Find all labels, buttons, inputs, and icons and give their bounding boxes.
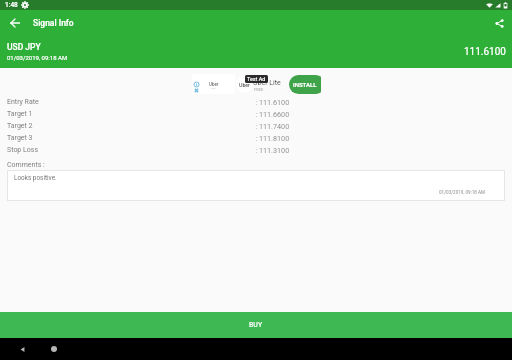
staticText: USD JPY — [7, 42, 41, 52]
staticText: : — [256, 110, 258, 118]
staticText: 111.8100 — [259, 134, 290, 142]
staticText: Stop Loss — [7, 146, 39, 154]
staticText: : — [256, 134, 258, 142]
staticText: Comments : — [7, 161, 45, 169]
button[interactable]: Home — [44, 339, 64, 359]
button[interactable]: Stop Loss — [0, 144, 512, 156]
staticText: INSTALL — [293, 81, 317, 88]
button[interactable]: Entry Rate — [0, 96, 512, 108]
staticText: : — [256, 122, 258, 130]
staticText: 1:48 — [5, 1, 18, 9]
staticText: Uber — [239, 82, 250, 88]
staticText: BUY — [249, 321, 263, 329]
button[interactable]: Back — [12, 339, 32, 359]
staticText: Target 1 — [7, 110, 33, 118]
staticText: FREE — [254, 87, 264, 92]
staticText: 111.6600 — [259, 110, 290, 118]
staticText: 111.3100 — [259, 146, 290, 154]
staticText: : — [256, 146, 258, 154]
staticText: Uber — [209, 82, 219, 87]
button[interactable]: Share — [486, 10, 512, 36]
staticText: Target 2 — [7, 122, 33, 130]
staticText: Test Ad — [247, 76, 266, 82]
staticText: 01/03/2019, 09:18 AM — [7, 54, 68, 61]
button[interactable]: BUY — [0, 312, 512, 338]
staticText: Entry Rate — [7, 98, 39, 106]
staticText: Looks positive. — [14, 174, 57, 182]
button[interactable]: Target 3 — [0, 132, 512, 144]
staticText: Uber Lite — [253, 79, 281, 87]
staticText: 111.6100 — [464, 46, 506, 58]
button[interactable]: Target 1 — [0, 108, 512, 120]
staticText: 01/03/2019, 09:18 AM — [439, 190, 486, 195]
staticText: 111.7400 — [259, 122, 290, 130]
button[interactable]: Target 2 — [0, 120, 512, 132]
staticText: Target 3 — [7, 134, 33, 142]
button[interactable]: INSTALL — [289, 75, 321, 94]
staticText: : — [256, 98, 258, 106]
button[interactable]: Looks positive. — [7, 170, 505, 201]
staticText: 111.6100 — [259, 98, 290, 106]
staticText: —— — [211, 87, 216, 91]
staticText: Signal Info — [33, 18, 74, 28]
button[interactable]: Back — [0, 10, 26, 36]
button[interactable]: Uber — [192, 74, 321, 94]
